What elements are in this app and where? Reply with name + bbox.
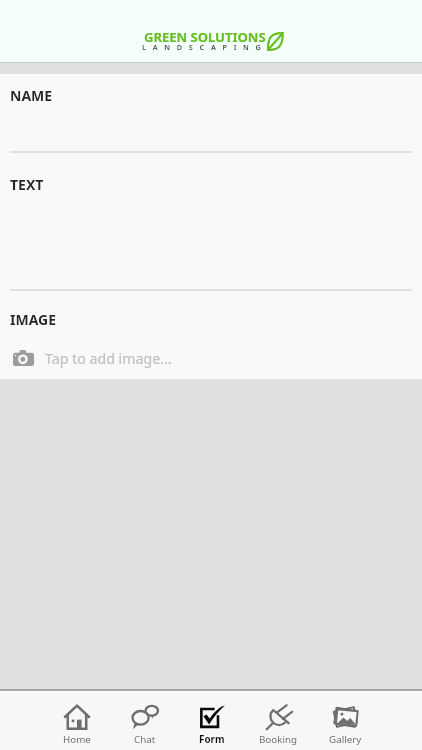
button[interactable]: Home	[43, 693, 111, 750]
button[interactable]: Gallery	[312, 693, 379, 750]
staticText: NAME	[10, 86, 53, 105]
staticText: Tap to add image...	[45, 349, 172, 368]
staticText: Chat	[134, 733, 156, 746]
button[interactable]: Form	[178, 693, 245, 750]
button[interactable]: Booking	[245, 693, 312, 750]
button[interactable]: Text input field	[0, 153, 422, 290]
staticText: GREEN SOLUTIONS	[144, 28, 266, 46]
staticText: IMAGE	[10, 310, 57, 329]
staticText: Gallery	[329, 733, 362, 746]
button[interactable]: Chat	[111, 693, 178, 750]
button[interactable]: Name input field	[0, 74, 422, 152]
staticText: LANDSCAPING	[142, 42, 268, 52]
staticText: TEXT	[10, 175, 44, 194]
staticText: Form	[199, 733, 225, 746]
button[interactable]: Tap to add image	[0, 342, 422, 374]
staticText: Home	[63, 733, 91, 746]
staticText: Booking	[259, 733, 298, 746]
